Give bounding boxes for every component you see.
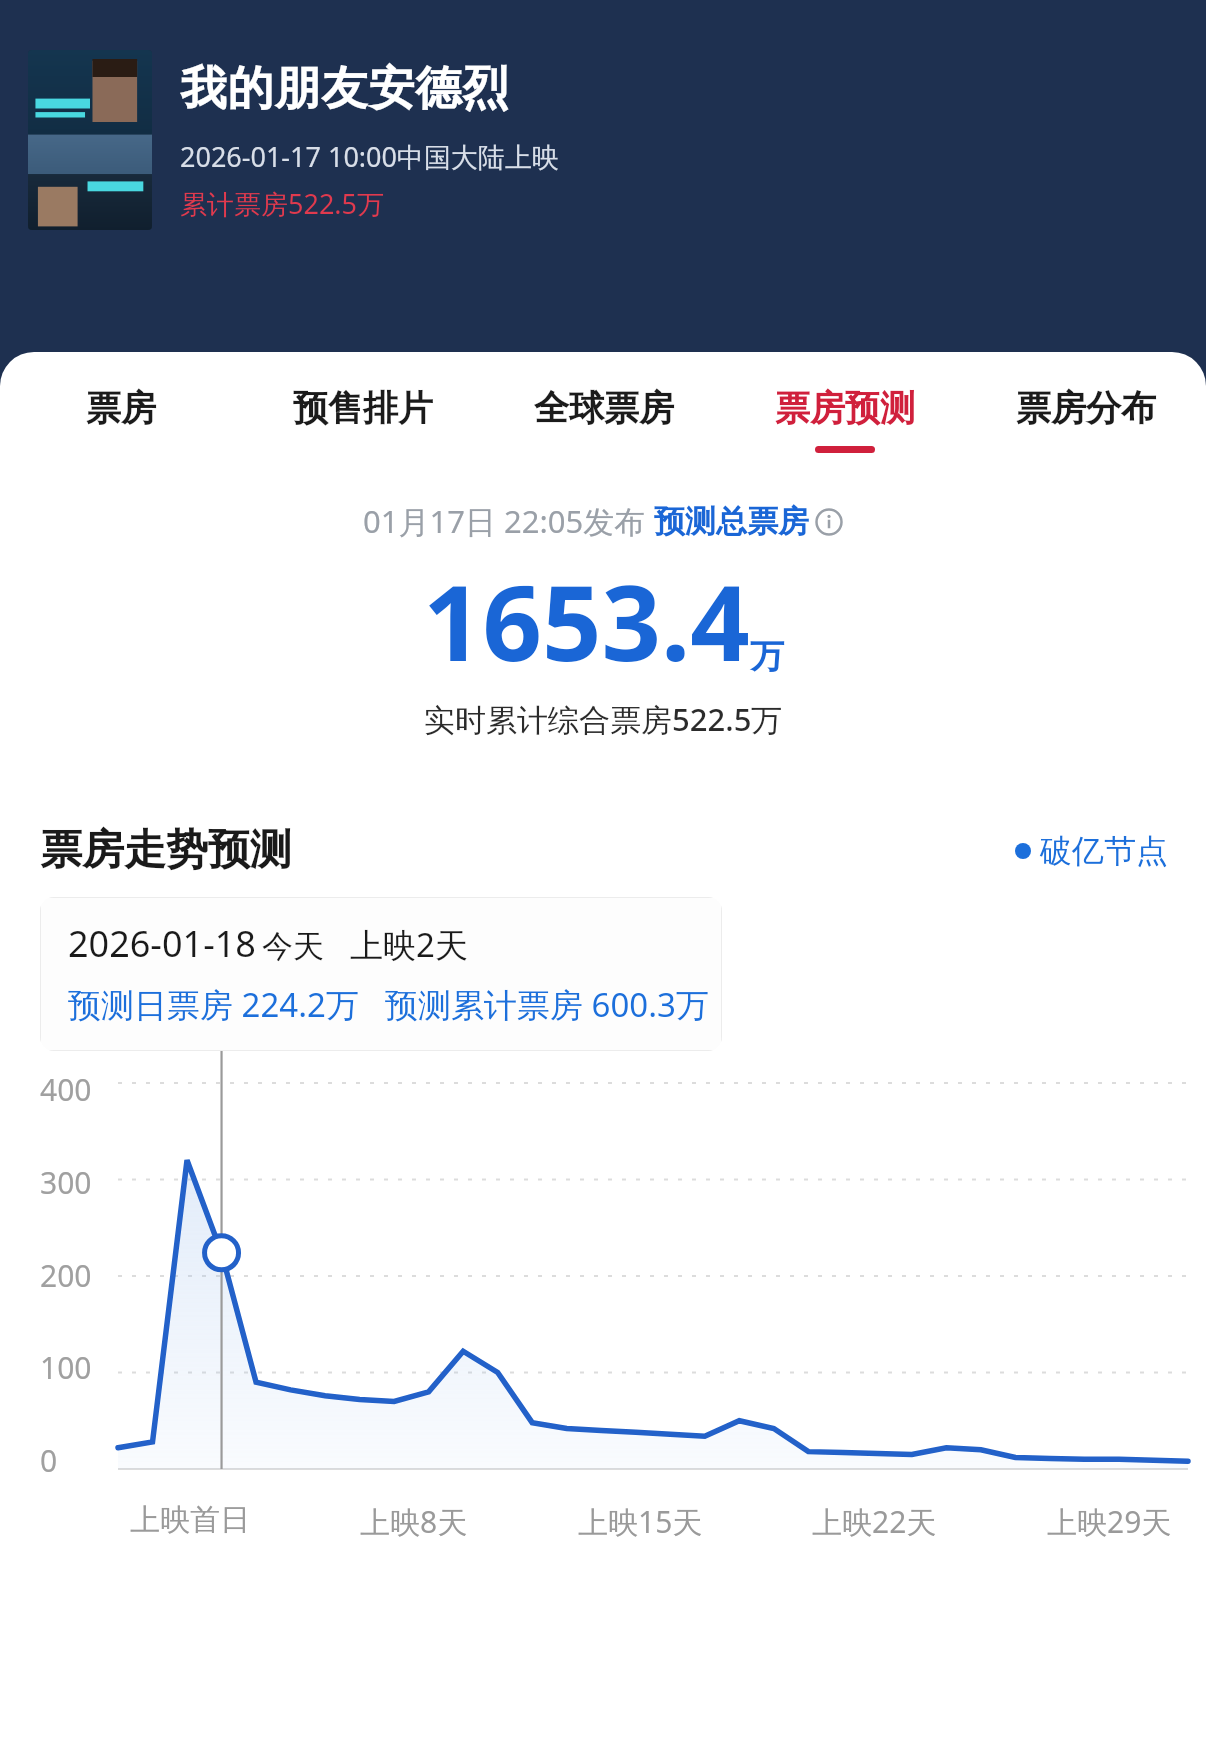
button[interactable]: 票房分布 xyxy=(965,380,1206,459)
button[interactable]: Movie poster xyxy=(28,50,152,230)
staticText: 2026-01-18 xyxy=(68,919,256,968)
button[interactable]: 2026-01-18 xyxy=(40,897,722,1051)
staticText: 票房预测 xyxy=(775,386,915,430)
staticText: 上映22天 xyxy=(812,1501,937,1542)
staticText: 上映2天 xyxy=(350,922,468,967)
staticText: 万 xyxy=(750,635,784,678)
button[interactable]: 破亿节点 xyxy=(1015,831,1168,871)
staticText: 今天 xyxy=(262,927,324,966)
staticText: 破亿节点 xyxy=(1040,831,1168,871)
staticText: 预测总票房 xyxy=(654,502,809,541)
button[interactable]: 全球票房 xyxy=(483,380,724,459)
staticText: 我的朋友安德烈 xyxy=(180,60,509,118)
other: Info xyxy=(815,508,843,536)
staticText: 实时累计综合票房522.5万 xyxy=(424,698,783,740)
staticText: 票房 xyxy=(86,386,156,430)
staticText: 0 xyxy=(40,1440,58,1481)
staticText: 300 xyxy=(40,1162,92,1203)
staticText: 100 xyxy=(40,1347,92,1388)
staticText: 上映15天 xyxy=(578,1501,703,1542)
staticText: 1653.4 xyxy=(423,550,750,692)
staticText: 全球票房 xyxy=(534,386,674,430)
staticText: 上映8天 xyxy=(360,1501,468,1542)
button[interactable]: 预售排片 xyxy=(242,380,483,459)
button[interactable]: 票房 xyxy=(0,380,242,459)
staticText: 累计票房522.5万 xyxy=(180,185,385,222)
staticText: 票房分布 xyxy=(1016,386,1156,430)
button[interactable]: 票房预测 xyxy=(724,380,965,459)
staticText: 预测累计票房 600.3万 xyxy=(385,982,709,1027)
staticText: 400 xyxy=(40,1069,92,1110)
staticText: 01月17日 22:05发布 xyxy=(363,500,654,542)
staticText: 上映29天 xyxy=(1047,1501,1172,1542)
staticText: 200 xyxy=(40,1255,92,1296)
staticText: 票房走势预测 xyxy=(40,824,292,877)
button[interactable]: 预测总票房 xyxy=(654,502,843,541)
staticText: 预售排片 xyxy=(293,386,433,430)
staticText: 2026-01-17 10:00中国大陆上映 xyxy=(180,138,559,175)
staticText: 上映首日 xyxy=(130,1501,250,1539)
staticText: 预测日票房 224.2万 xyxy=(68,982,359,1027)
